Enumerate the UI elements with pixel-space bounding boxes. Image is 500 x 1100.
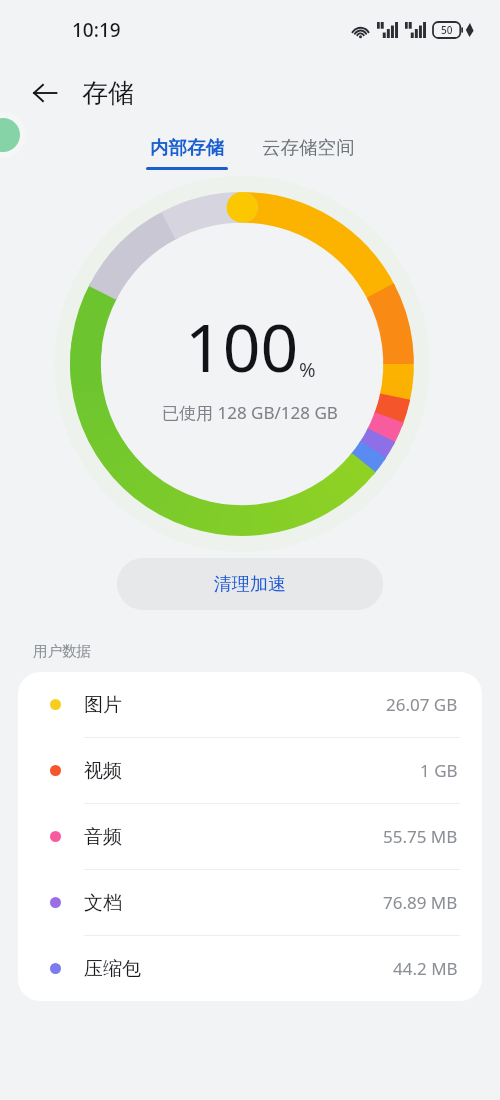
staticText: 图片: [84, 693, 122, 717]
button[interactable]: 云存储空间: [254, 136, 363, 159]
button[interactable]: 音频: [18, 804, 482, 869]
staticText: 55.75 MB: [383, 825, 458, 848]
button[interactable]: 清理加速: [117, 558, 383, 610]
staticText: 云存储空间: [262, 136, 355, 159]
button[interactable]: 压缩包: [18, 936, 482, 1001]
staticText: 10:19: [72, 17, 121, 43]
staticText: 内部存储: [150, 136, 224, 159]
staticText: 存储: [82, 77, 134, 110]
staticText: 1 GB: [420, 759, 458, 782]
staticText: 50: [441, 23, 453, 37]
button[interactable]: Floating assistant: [0, 112, 26, 158]
staticText: 100: [185, 301, 299, 391]
button[interactable]: Back: [22, 70, 68, 116]
button[interactable]: 内部存储: [138, 136, 236, 170]
staticText: 音频: [84, 825, 122, 849]
staticText: 用户数据: [33, 642, 91, 660]
button[interactable]: 视频: [18, 738, 482, 803]
button[interactable]: 图片: [18, 672, 482, 737]
staticText: 已使用 128 GB/128 GB: [162, 401, 338, 424]
staticText: 视频: [84, 759, 122, 783]
button[interactable]: 文档: [18, 870, 482, 935]
staticText: 44.2 MB: [393, 957, 458, 980]
staticText: 26.07 GB: [386, 693, 458, 716]
staticText: 压缩包: [84, 957, 141, 981]
staticText: 清理加速: [214, 573, 286, 596]
staticText: 文档: [84, 891, 122, 915]
staticText: %: [299, 356, 316, 383]
staticText: 76.89 MB: [383, 891, 458, 914]
